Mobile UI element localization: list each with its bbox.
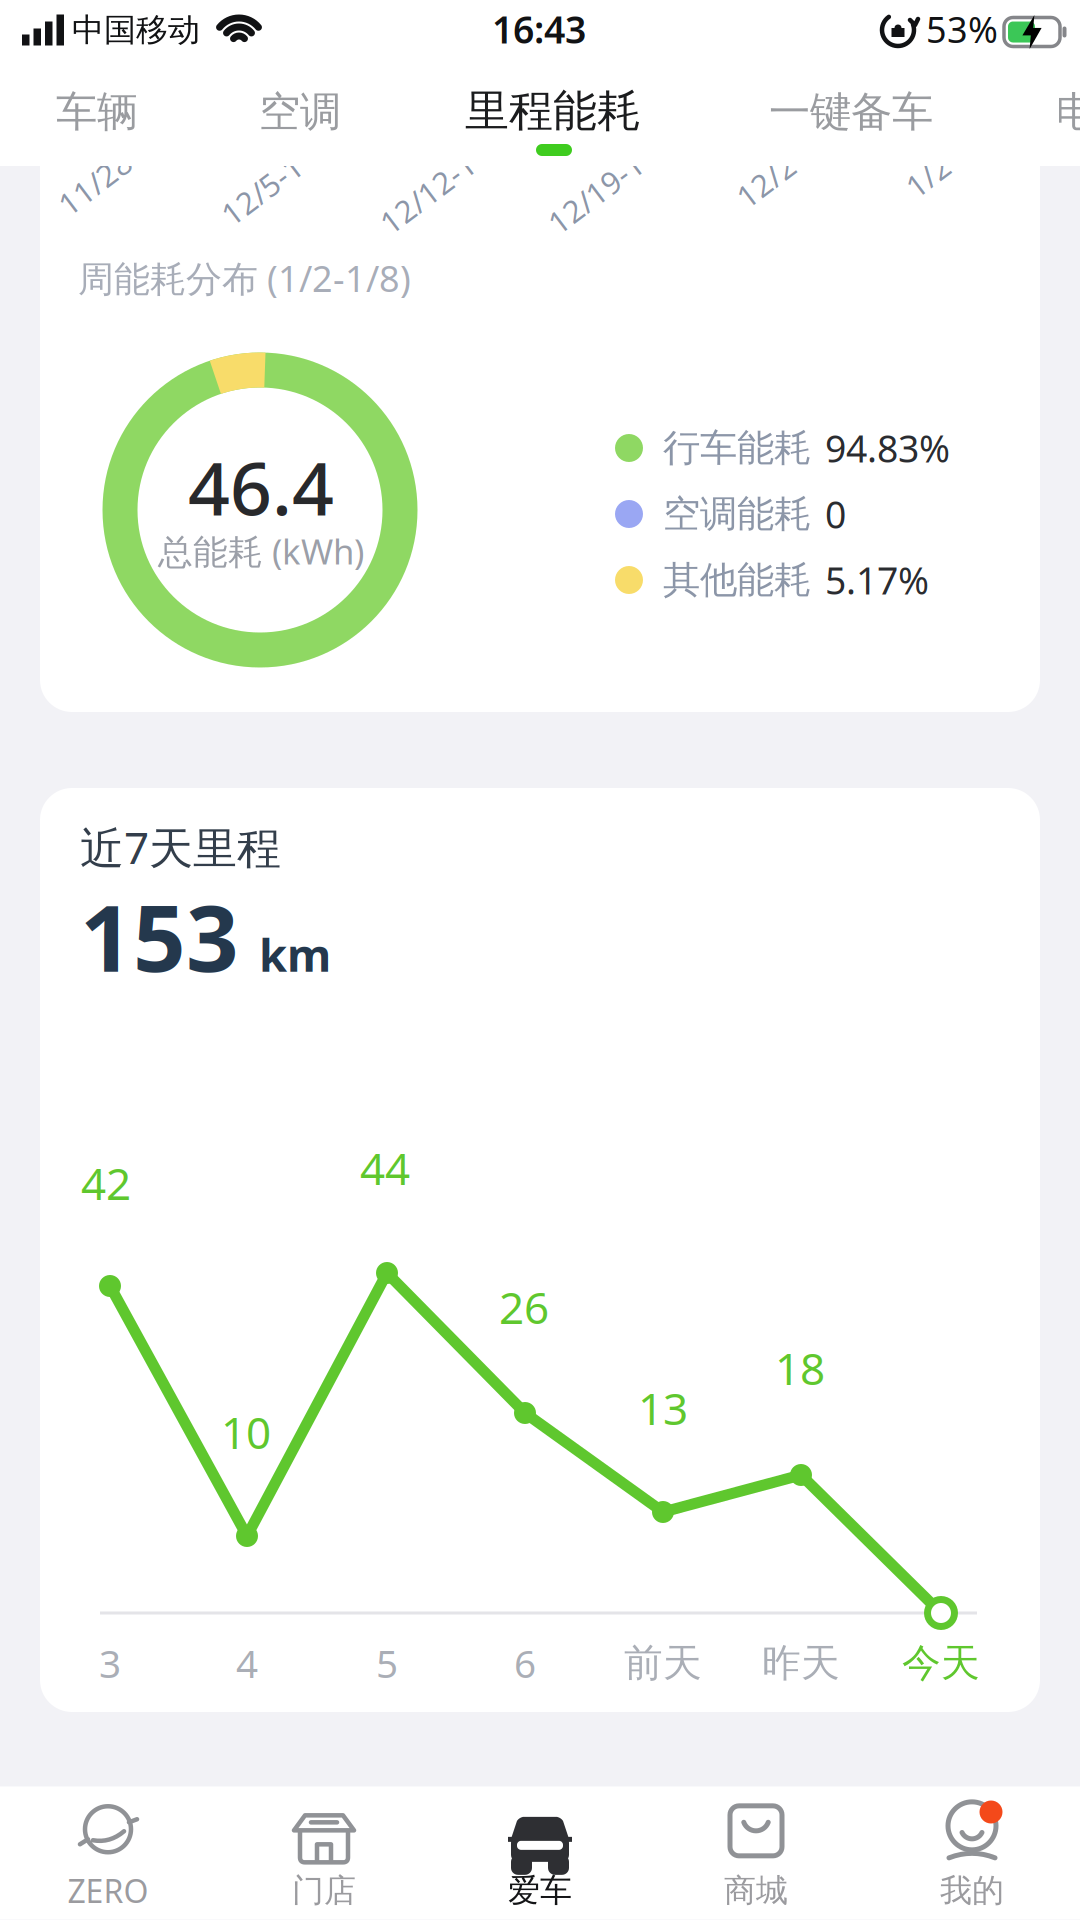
button[interactable]: 里程能耗 (465, 84, 641, 138)
staticText: 0 (825, 489, 846, 539)
button[interactable]: ZERO (18, 1797, 198, 1915)
staticText: 26 (499, 1278, 549, 1336)
button[interactable]: 一键备车 (769, 87, 933, 137)
staticText: 13 (638, 1379, 688, 1437)
button[interactable]: 爱车 (450, 1797, 630, 1915)
staticText: 今天 (902, 1639, 980, 1687)
staticText: 11/28 (53, 163, 136, 203)
staticText: 12/12-1 (372, 173, 483, 213)
button[interactable]: 车辆 (56, 87, 138, 137)
button[interactable]: 电 (1055, 87, 1080, 137)
staticText: 5.17% (825, 555, 929, 605)
staticText: 46.4 (188, 438, 334, 536)
staticText: 44 (360, 1139, 410, 1197)
staticText: 3 (99, 1637, 121, 1689)
staticText: 前天 (624, 1639, 702, 1687)
staticText: 12/2 (733, 161, 798, 201)
staticText: 近7天里程 (80, 818, 281, 876)
button[interactable]: 我的 (882, 1797, 1062, 1915)
staticText: 里程能耗 (465, 84, 641, 138)
staticText: ZERO (67, 1869, 148, 1912)
staticText: 周能耗分布 (1/2-1/8) (78, 254, 411, 302)
staticText: 4 (236, 1637, 258, 1689)
staticText: 5 (376, 1637, 398, 1689)
staticText: 18 (775, 1339, 825, 1397)
staticText: 空调 (259, 87, 341, 137)
staticText: 153 (80, 875, 239, 997)
staticText: 商城 (724, 1871, 788, 1910)
staticText: 车辆 (56, 87, 138, 137)
staticText: 门店 (292, 1871, 356, 1910)
staticText: 6 (514, 1637, 536, 1689)
staticText: 我的 (940, 1871, 1004, 1910)
staticText: 其他能耗 (663, 557, 811, 603)
staticText: 中国移动 (72, 10, 200, 50)
button[interactable]: 商城 (666, 1797, 846, 1915)
staticText: km (259, 924, 331, 984)
staticText: 12/19-1 (540, 173, 651, 213)
staticText: 电 (1055, 87, 1080, 137)
staticText: 94.83% (825, 423, 950, 473)
staticText: 16:43 (492, 4, 586, 54)
staticText: 爱车 (508, 1871, 572, 1910)
button[interactable]: 门店 (234, 1797, 414, 1915)
staticText: 总能耗 (kWh) (158, 528, 364, 574)
staticText: 10 (221, 1403, 271, 1461)
staticText: 12/5-1 (215, 170, 308, 210)
staticText: 空调能耗 (663, 491, 811, 537)
button[interactable]: 空调 (259, 87, 341, 137)
staticText: 53% (926, 5, 998, 53)
staticText: 1/2 (904, 156, 951, 196)
staticText: 一键备车 (769, 87, 933, 137)
staticText: 行车能耗 (663, 425, 811, 471)
staticText: 昨天 (762, 1639, 840, 1687)
staticText: 42 (81, 1154, 131, 1212)
